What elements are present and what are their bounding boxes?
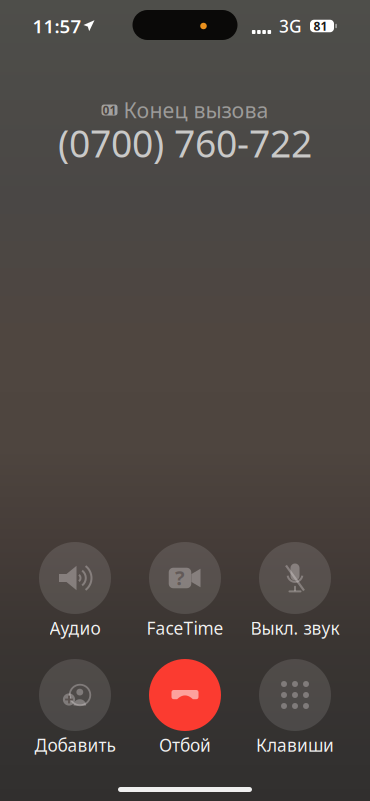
staticText: Клавиши (256, 733, 334, 756)
staticText: Добавить (34, 733, 115, 756)
button[interactable]: Отбой (130, 659, 240, 759)
button[interactable]: Аудио (20, 542, 130, 642)
staticText: Конец вызова (123, 96, 268, 124)
staticText: 01 (102, 102, 116, 118)
staticText: Отбой (159, 733, 211, 756)
button[interactable]: Выкл. звук (240, 542, 350, 642)
button[interactable]: ? (130, 542, 240, 642)
button[interactable]: Клавиши (240, 659, 350, 759)
staticText: FaceTime (146, 616, 223, 639)
button[interactable]: Добавить (20, 659, 130, 759)
staticText: 3G (279, 14, 302, 37)
staticText: Аудио (49, 616, 100, 639)
staticText: 11:57 (32, 14, 81, 38)
staticText: (0700) 760-722 (58, 118, 312, 168)
staticText: Выкл. звук (250, 616, 339, 639)
staticText: 81 (313, 18, 327, 34)
staticText: ? (175, 564, 185, 591)
